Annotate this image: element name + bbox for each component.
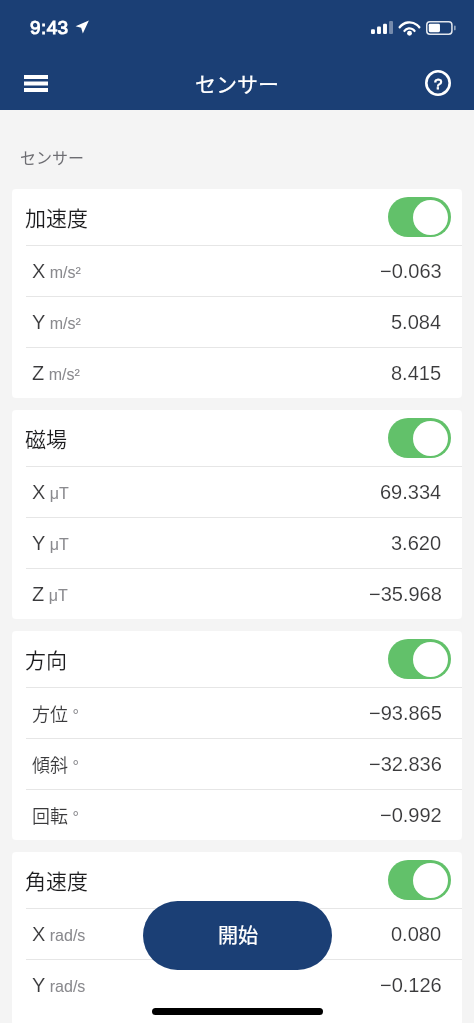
staticText: −0.063 [380,260,442,282]
button[interactable]: Toggle sensor [388,418,451,458]
staticText: 方向 [25,644,67,674]
staticText: 磁場 [25,423,67,453]
staticText: −93.865 [369,702,442,724]
staticText: 加速度 [25,202,88,232]
staticText: 方位 ° [32,700,79,726]
staticText: ? [434,75,443,92]
staticText: センサー [195,68,279,98]
button[interactable]: 磁場 [12,410,462,466]
staticText: 回転 ° [32,802,79,828]
staticText: Y rad/s [32,974,86,996]
staticText: 0.080 [391,923,442,945]
staticText: 傾斜 ° [32,751,79,777]
staticText: Y μT [32,532,69,554]
staticText: −32.836 [369,753,442,775]
staticText: X rad/s [32,923,86,945]
staticText: X m/s² [32,260,81,282]
staticText: −35.968 [369,583,442,605]
button[interactable]: Toggle sensor [388,639,451,679]
staticText: −0.992 [380,804,442,826]
button[interactable]: 加速度 [12,189,462,245]
staticText: Y m/s² [32,311,81,333]
staticText: 5.084 [391,311,442,333]
staticText: Z μT [32,583,68,605]
button[interactable]: Toggle sensor [388,197,451,237]
button[interactable]: Help [414,59,462,107]
staticText: センサー [20,145,85,168]
staticText: 69.334 [380,481,442,503]
staticText: 9:43 [30,17,69,38]
staticText: 8.415 [391,362,442,384]
button[interactable]: 方向 [12,631,462,687]
staticText: Z m/s² [32,362,80,384]
staticText: 角速度 [25,865,88,895]
button[interactable]: 開始 [143,901,332,970]
button[interactable]: 角速度 [12,852,462,908]
staticText: X μT [32,481,69,503]
staticText: 開始 [218,920,258,949]
button[interactable]: Menu [12,59,60,107]
staticText: −0.126 [380,974,442,996]
staticText: 3.620 [391,532,442,554]
button[interactable]: Toggle sensor [388,860,451,900]
